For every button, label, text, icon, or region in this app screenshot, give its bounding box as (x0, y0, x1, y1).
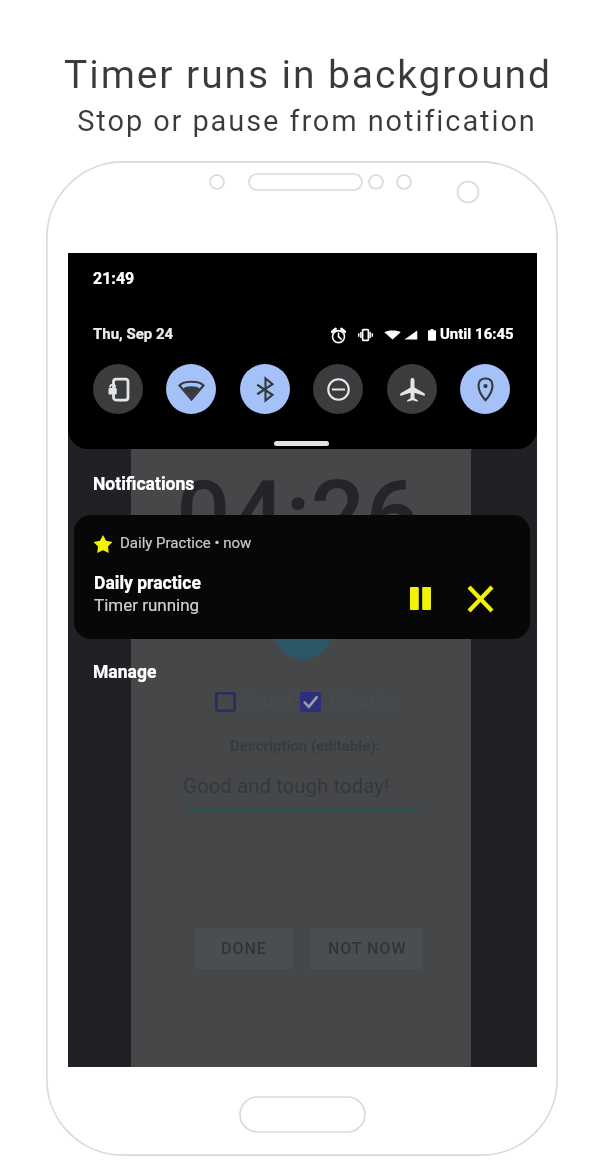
staticText: NOT NOW (328, 939, 407, 958)
staticText: Timer running (94, 595, 200, 615)
button[interactable]: Daily Practice • now (74, 515, 530, 639)
staticText: Stop or pause from notification (77, 104, 537, 138)
button[interactable]: Bluetooth (240, 364, 290, 414)
staticText: 21:49 (93, 269, 135, 288)
staticText: Description (editable): (230, 737, 380, 755)
button[interactable]: DONE (195, 928, 293, 969)
staticText: Notifications (93, 474, 195, 495)
button[interactable]: Screen lock (93, 364, 143, 414)
staticText: Timer runs in background (64, 52, 552, 98)
button[interactable]: Wi-Fi (166, 364, 216, 414)
button[interactable]: Dismiss notification (458, 576, 503, 621)
button[interactable]: Do not disturb (313, 364, 363, 414)
staticText: Daily Practice • now (120, 534, 252, 552)
button[interactable]: Location (460, 364, 510, 414)
button[interactable]: Manage (93, 662, 157, 683)
staticText: Good and tough today! (183, 774, 390, 798)
staticText: Until 16:45 (440, 325, 514, 343)
staticText: Thu, Sep 24 (93, 325, 174, 343)
staticText: Daily practice (94, 573, 201, 594)
button[interactable]: NOT NOW (311, 928, 423, 969)
button[interactable]: Pause timer (398, 576, 443, 621)
button[interactable]: Airplane mode (387, 364, 437, 414)
staticText: DONE (221, 939, 267, 958)
staticText: 04:26 (176, 460, 420, 573)
